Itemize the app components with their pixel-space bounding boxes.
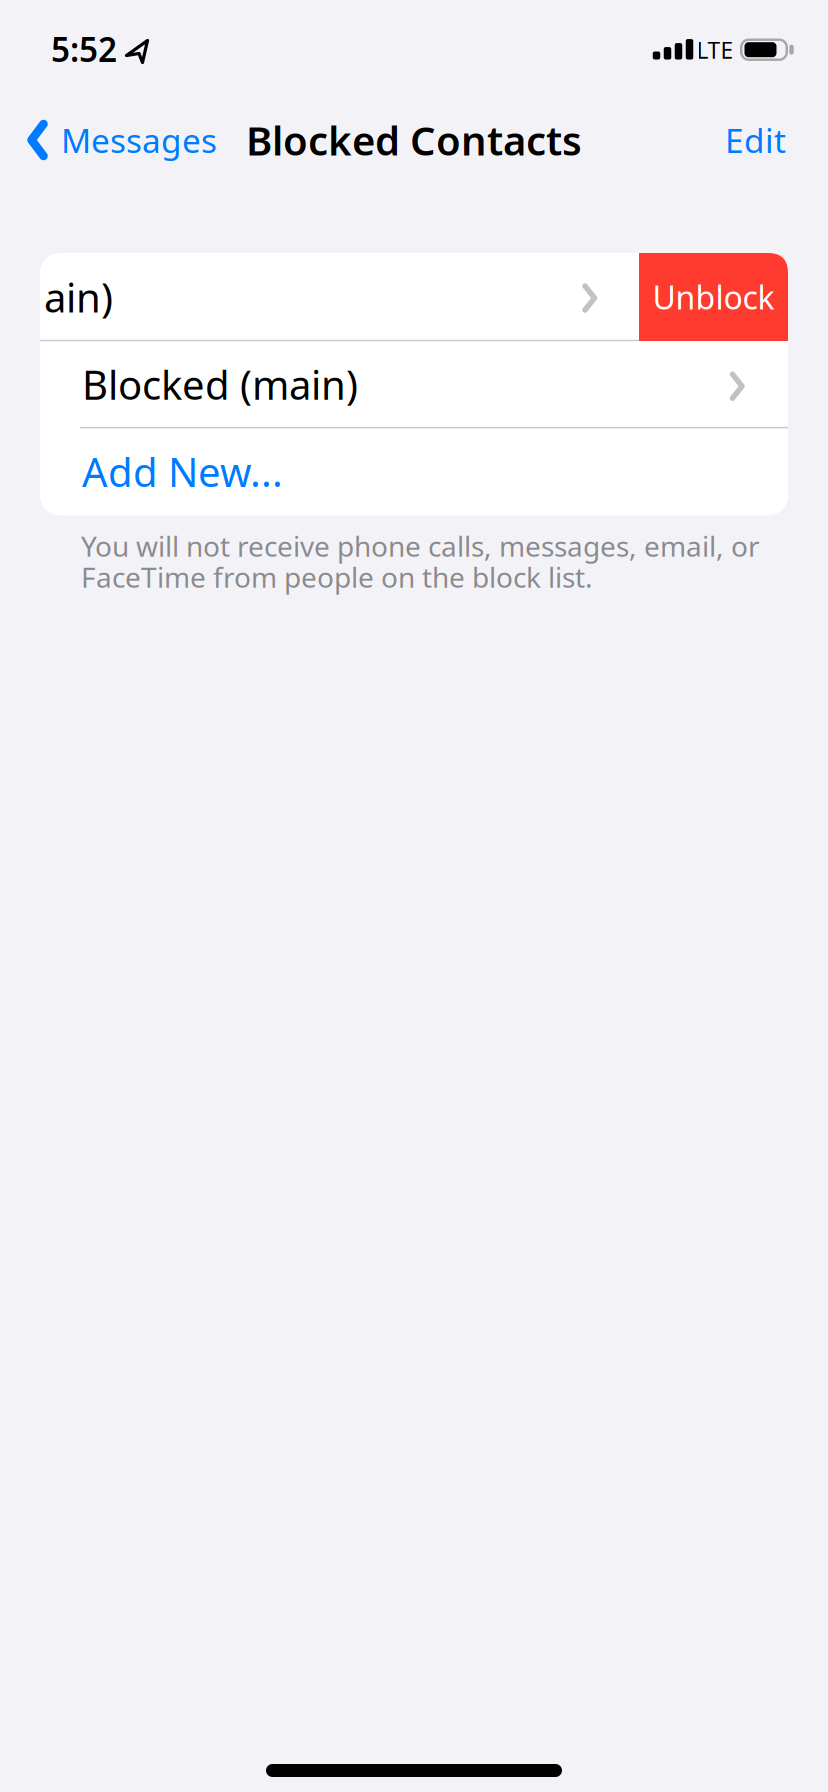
staticText: Unblock xyxy=(652,276,774,318)
staticText: Edit xyxy=(725,118,786,162)
staticText: Blocked Contacts xyxy=(246,113,582,166)
staticText: LTE xyxy=(696,35,733,65)
button[interactable]: Blocked (main) xyxy=(40,341,788,428)
button[interactable]: Add New... xyxy=(40,428,788,515)
staticText: You will not receive phone calls, messag… xyxy=(81,527,760,565)
button[interactable]: Edit xyxy=(666,111,786,169)
staticText: 5:52 xyxy=(51,27,117,71)
staticText: Blocked (main) xyxy=(82,358,358,411)
staticText: Messages xyxy=(61,118,217,162)
staticText: FaceTime from people on the block list. xyxy=(81,558,593,596)
staticText: ain) xyxy=(44,270,113,323)
button[interactable]: ain) xyxy=(40,253,639,341)
button[interactable]: Back xyxy=(26,111,256,169)
button[interactable]: Unblock xyxy=(639,253,788,341)
staticText: Add New... xyxy=(82,445,283,498)
